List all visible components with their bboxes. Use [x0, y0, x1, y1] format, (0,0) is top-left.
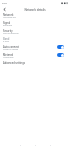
staticText: Auto-connect	[3, 45, 20, 48]
button[interactable]: Metered	[0, 53, 70, 61]
staticText: Security	[3, 29, 13, 32]
staticText: WPA2-Personal	[3, 32, 19, 35]
staticText: Metered	[3, 53, 14, 56]
staticText: Automatic	[3, 56, 14, 59]
staticText: When in range	[3, 48, 19, 51]
button[interactable]: Back	[0, 5, 8, 13]
button[interactable]: Band	[0, 37, 70, 45]
button[interactable]: Auto-connect	[0, 45, 70, 53]
staticText: ● ● ▮	[61, 1, 68, 4]
button[interactable]: Advanced settings	[0, 61, 70, 69]
button[interactable]: Security	[0, 29, 70, 37]
staticText: Signal	[3, 21, 11, 24]
button[interactable]: Auto-connect	[57, 45, 64, 49]
staticText: 9:30	[2, 1, 7, 4]
button[interactable]: Signal	[0, 21, 70, 29]
staticText: Network	[3, 13, 14, 16]
staticText: Advanced settings	[3, 61, 25, 64]
staticText: Band	[3, 37, 10, 40]
staticText: Network details	[0, 8, 70, 12]
staticText: 5 GHz	[3, 40, 10, 43]
button[interactable]: Network	[0, 13, 70, 21]
staticText: Excellent	[3, 24, 13, 27]
staticText: MyHome-5G	[3, 16, 16, 19]
button[interactable]: Metered network	[57, 53, 64, 57]
